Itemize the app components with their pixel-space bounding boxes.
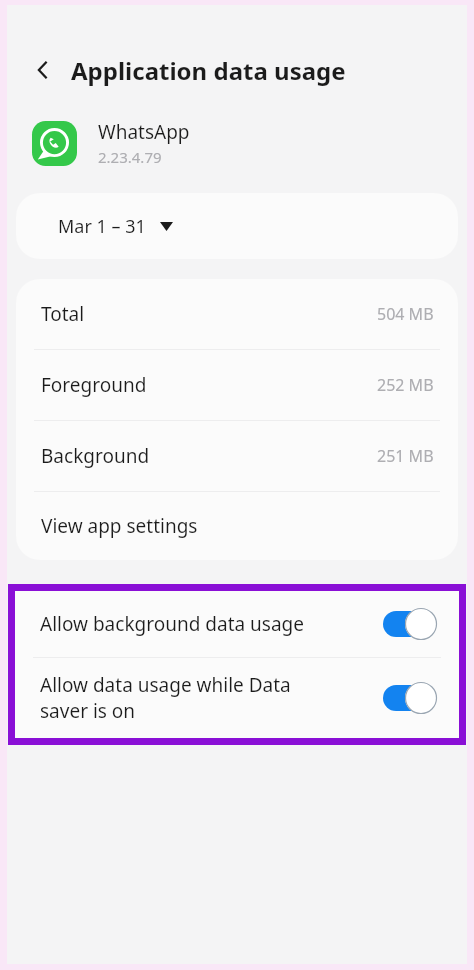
button[interactable]: Toggle on: [383, 682, 437, 714]
staticText: Application data usage: [71, 54, 346, 87]
button[interactable]: Allow background data usage: [15, 591, 459, 657]
staticText: Total: [41, 301, 85, 327]
staticText: WhatsApp: [98, 119, 190, 145]
staticText: View app settings: [41, 513, 198, 539]
staticText: 504 MB: [377, 303, 434, 325]
button[interactable]: Foreground: [16, 350, 458, 420]
staticText: Allow background data usage: [40, 611, 305, 637]
staticText: Allow data usage while Data: [40, 672, 291, 698]
staticText: Foreground: [41, 372, 147, 398]
button[interactable]: Total: [16, 279, 458, 349]
staticText: Mar 1 – 31: [58, 214, 146, 239]
button[interactable]: View app settings: [16, 492, 458, 560]
button[interactable]: Mar 1 – 31: [16, 193, 458, 259]
button[interactable]: Background: [16, 421, 458, 491]
staticText: 252 MB: [377, 374, 434, 396]
staticText: 2.23.4.79: [98, 147, 162, 167]
staticText: Background: [41, 443, 150, 469]
button[interactable]: Allow data usage while Data: [15, 658, 459, 738]
button[interactable]: Toggle on: [383, 608, 437, 640]
staticText: saver is on: [40, 698, 136, 724]
button[interactable]: Back: [21, 48, 65, 92]
staticText: 251 MB: [377, 445, 434, 467]
